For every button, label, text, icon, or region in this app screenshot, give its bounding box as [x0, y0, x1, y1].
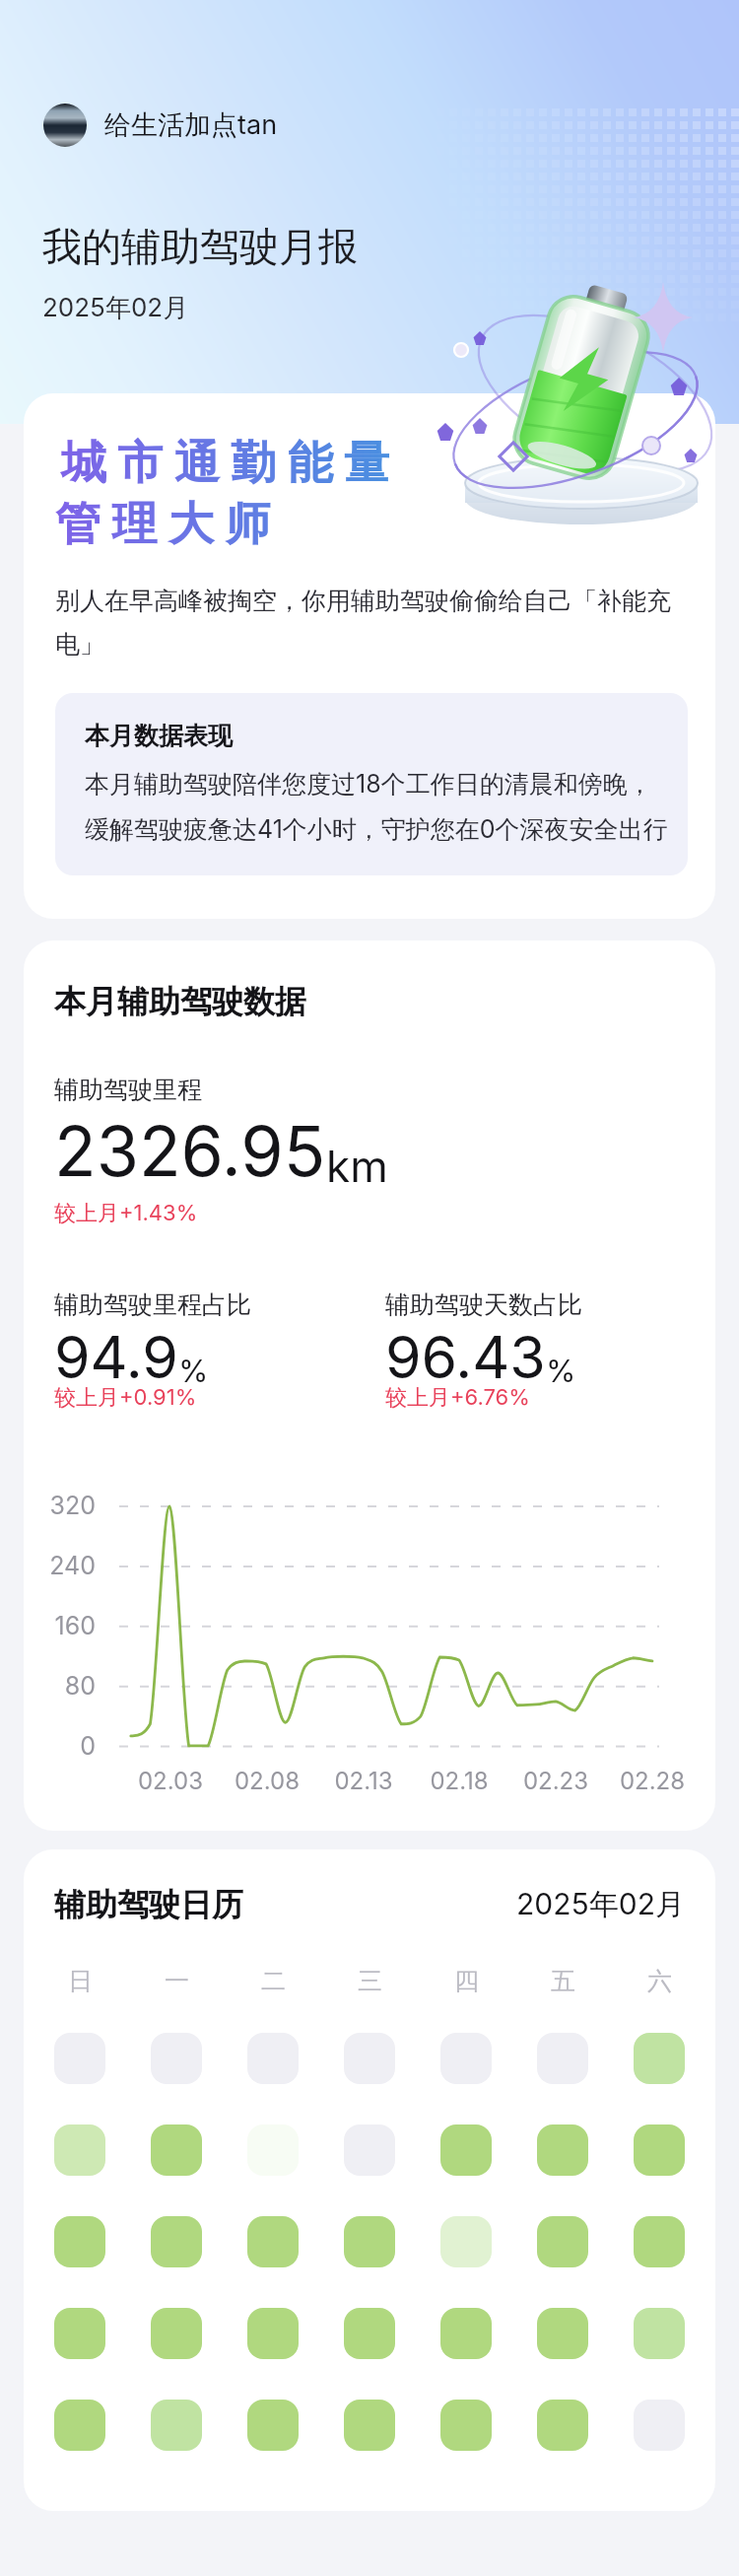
staticText: 2025年02月 [42, 292, 189, 324]
staticText: 02.28 [608, 1767, 697, 1795]
staticText: 四 [454, 1966, 479, 1996]
button[interactable] [344, 2216, 395, 2267]
button[interactable] [151, 2400, 202, 2451]
staticText: 320 [24, 1491, 96, 1520]
staticText: 0 [24, 1731, 96, 1761]
staticText: 较上月+6.76% [385, 1384, 530, 1412]
button[interactable] [537, 2400, 588, 2451]
staticText: 2025年02月 [516, 1886, 685, 1923]
button[interactable] [634, 2308, 685, 2359]
staticText: 二 [261, 1966, 286, 1996]
staticText: 较上月+1.43% [54, 1200, 198, 1227]
button[interactable] [440, 2033, 492, 2084]
button[interactable] [440, 2308, 492, 2359]
staticText: 一 [165, 1966, 189, 1996]
button[interactable] [247, 2124, 299, 2176]
staticText: 02.03 [126, 1767, 215, 1795]
staticText: 辅助驾驶日历 [54, 1885, 243, 1924]
staticText: 辅助驾驶里程占比 [54, 1289, 251, 1320]
staticText: 96.43 [385, 1322, 546, 1392]
staticText: 日 [68, 1966, 93, 1996]
button[interactable] [54, 2308, 105, 2359]
staticText: 2326.95 [54, 1109, 326, 1193]
button[interactable] [634, 2124, 685, 2176]
button[interactable] [344, 2308, 395, 2359]
button[interactable] [537, 2033, 588, 2084]
staticText: 本月辅助驾驶陪伴您度过18个工作日的清晨和傍晚，缓解驾驶疲惫达41个小时，守护您… [85, 769, 674, 846]
button[interactable] [54, 2400, 105, 2451]
staticText: 02.23 [511, 1767, 600, 1795]
button[interactable] [151, 2033, 202, 2084]
staticText: 80 [24, 1671, 96, 1701]
staticText: 辅助驾驶天数占比 [385, 1289, 582, 1320]
button[interactable] [440, 2216, 492, 2267]
button[interactable] [247, 2308, 299, 2359]
button[interactable] [537, 2124, 588, 2176]
staticText: % [178, 1353, 209, 1390]
staticText: 02.18 [415, 1767, 504, 1795]
button[interactable] [537, 2216, 588, 2267]
button[interactable] [54, 2033, 105, 2084]
button[interactable] [344, 2400, 395, 2451]
button[interactable] [344, 2033, 395, 2084]
button[interactable] [344, 2124, 395, 2176]
button[interactable] [54, 2124, 105, 2176]
staticText: 五 [551, 1966, 575, 1996]
staticText: km [326, 1140, 388, 1192]
staticText: 较上月+0.91% [54, 1384, 197, 1412]
staticText: 六 [647, 1966, 672, 1996]
button[interactable] [151, 2216, 202, 2267]
button[interactable] [440, 2124, 492, 2176]
button[interactable]: 给生活加点tan [43, 104, 278, 147]
staticText: 240 [24, 1551, 96, 1580]
button[interactable] [537, 2308, 588, 2359]
button[interactable] [634, 2400, 685, 2451]
button[interactable] [151, 2308, 202, 2359]
button[interactable] [247, 2400, 299, 2451]
staticText: 02.13 [319, 1767, 408, 1795]
staticText: 城市通勤能量 管理大师 [55, 435, 395, 552]
button[interactable] [247, 2216, 299, 2267]
button[interactable] [634, 2033, 685, 2084]
button[interactable] [151, 2124, 202, 2176]
staticText: 辅助驾驶里程 [54, 1075, 202, 1105]
staticText: 本月数据表现 [85, 721, 233, 751]
staticText: 94.9 [54, 1322, 178, 1392]
staticText: 本月辅助驾驶数据 [54, 982, 306, 1021]
staticText: 给生活加点tan [104, 108, 278, 142]
staticText: % [546, 1353, 576, 1390]
staticText: 三 [358, 1966, 382, 1996]
staticText: 我的辅助驾驶月报 [42, 222, 358, 271]
staticText: 02.08 [223, 1767, 311, 1795]
staticText: 别人在早高峰被掏空，你用辅助驾驶偷偷给自己「补能充电」 [55, 586, 688, 660]
staticText: 160 [24, 1611, 96, 1640]
button[interactable] [440, 2400, 492, 2451]
button[interactable] [247, 2033, 299, 2084]
button[interactable] [634, 2216, 685, 2267]
button[interactable] [54, 2216, 105, 2267]
